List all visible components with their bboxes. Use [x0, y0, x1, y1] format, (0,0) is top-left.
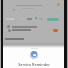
button[interactable]: Service reminder	[31, 51, 37, 57]
button[interactable]	[47, 18, 59, 21]
staticText: Service Reminder	[18, 62, 50, 67]
